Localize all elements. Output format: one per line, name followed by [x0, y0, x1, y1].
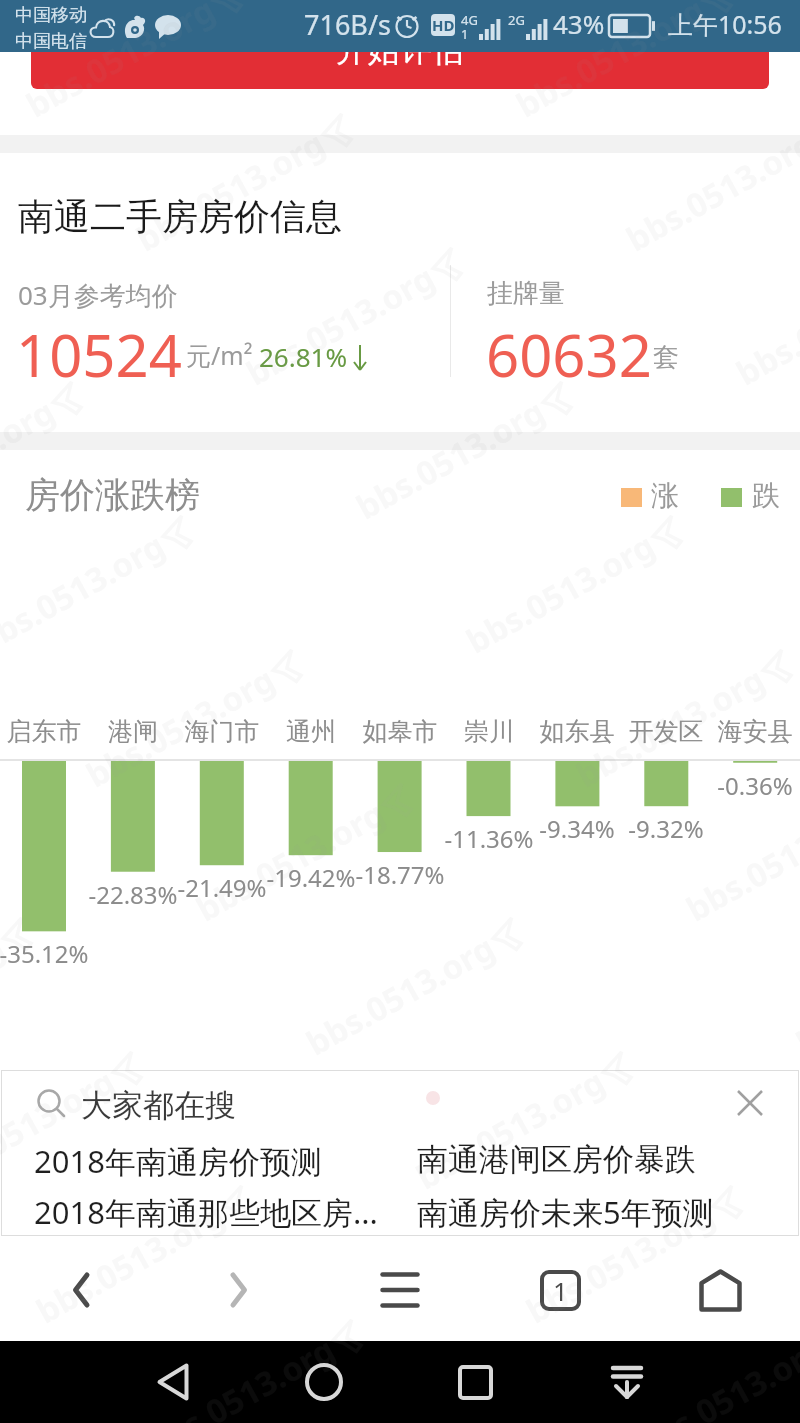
staticText: 4G — [461, 11, 478, 29]
staticText: bbs.0513.org — [348, 388, 553, 529]
staticText: bbs.0513.org — [188, 790, 393, 931]
staticText: 1 — [553, 1273, 568, 1308]
staticText: -9.32% — [466, 812, 800, 845]
staticText: 通州 — [111, 716, 511, 747]
staticText: bbs.0513.org — [0, 1058, 123, 1199]
staticText: -0.36% — [555, 769, 800, 802]
button[interactable]: 南通港闸区房价暴跌 — [417, 1140, 696, 1179]
staticText: 716B/s — [304, 6, 391, 43]
staticText: 海安县 — [555, 716, 800, 747]
staticText: 中国电信 — [15, 30, 87, 53]
staticText: HD — [432, 15, 455, 35]
staticText: 如东县 — [377, 716, 777, 747]
staticText: 崇川 — [289, 716, 689, 747]
staticText: bbs.0513.org — [408, 1058, 613, 1199]
staticText: 海门市 — [22, 716, 422, 747]
staticText: bbs.0513.org — [128, 120, 333, 261]
staticText: 开发区 — [466, 716, 800, 747]
button[interactable]: 关闭 — [729, 1082, 771, 1124]
button[interactable]: 南通房价未来5年预测 — [417, 1191, 714, 1233]
staticText: bbs.0513.org — [0, 924, 13, 1065]
staticText: 大家都在搜 — [81, 1086, 236, 1125]
staticText: -35.12% — [0, 937, 244, 970]
staticText: 10524 — [16, 315, 182, 394]
button[interactable]: 2018年南通房价预测 — [34, 1140, 322, 1182]
staticText: bbs.0513.org — [238, 254, 443, 395]
staticText: 如皋市 — [200, 716, 600, 747]
staticText: bbs.0513.org — [0, 388, 63, 529]
staticText: 上午10:56 — [668, 7, 782, 41]
button[interactable]: 主页 — [680, 1245, 760, 1335]
staticText: 开始评估 — [336, 52, 464, 67]
staticText: -19.42% — [111, 861, 511, 894]
staticText: -9.34% — [377, 812, 777, 845]
button[interactable]: 隐藏导航栏 — [587, 1341, 667, 1423]
staticText: bbs.0513.org — [678, 790, 800, 931]
staticText: 元/m² — [186, 338, 253, 372]
staticText: 跌 — [752, 478, 780, 513]
staticText: bbs.0513.org — [28, 1192, 233, 1333]
staticText: 03月参考均价 — [18, 277, 178, 313]
staticText: 60632 — [486, 315, 652, 394]
staticText: -18.77% — [200, 858, 600, 891]
button[interactable]: 返回 — [133, 1341, 213, 1423]
button[interactable]: 开始评估 — [31, 52, 769, 89]
staticText: -22.83% — [0, 878, 333, 911]
staticText: bbs.0513.org — [138, 1326, 343, 1423]
staticText: bbs.0513.org — [568, 656, 773, 797]
staticText: bbs.0513.org — [508, 0, 713, 127]
button[interactable]: 窗口 — [520, 1245, 600, 1335]
staticText: bbs.0513.org — [628, 1326, 800, 1423]
staticText: 43% — [553, 6, 605, 41]
staticText: bbs.0513.org — [618, 120, 800, 261]
button[interactable]: 2018年南通那些地区房... — [34, 1191, 378, 1233]
staticText: 南通二手房房价信息 — [18, 194, 342, 239]
button[interactable]: 主屏幕 — [284, 1341, 364, 1423]
staticText: -21.49% — [22, 871, 422, 904]
staticText: -11.36% — [289, 822, 689, 855]
staticText: 套 — [653, 341, 679, 374]
staticText: bbs.0513.org — [78, 656, 283, 797]
button[interactable]: 后退 — [40, 1245, 120, 1335]
button[interactable]: 最近任务 — [435, 1341, 515, 1423]
staticText: 2G — [508, 11, 525, 29]
staticText: bbs.0513.org — [518, 1192, 723, 1333]
staticText: 中国移动 — [15, 4, 87, 27]
button[interactable]: 前进 — [200, 1245, 280, 1335]
staticText: 房价涨跌榜 — [25, 473, 200, 517]
staticText: 港闸 — [0, 716, 333, 747]
staticText: 1 — [461, 25, 469, 43]
button[interactable]: 菜单 — [360, 1245, 440, 1335]
staticText: 涨 — [651, 478, 679, 513]
staticText: bbs.0513.org — [18, 0, 223, 127]
staticText: 启东市 — [0, 716, 244, 747]
staticText: 挂牌量 — [487, 277, 565, 310]
staticText: 26.81% — [259, 339, 348, 374]
